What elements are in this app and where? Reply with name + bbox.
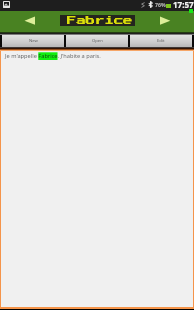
staticText: 76% (155, 1, 166, 8)
button[interactable]: Edit (130, 35, 192, 47)
button[interactable]: Open (66, 35, 128, 47)
button[interactable]: Next (157, 13, 175, 29)
staticText: Edit (157, 38, 165, 44)
staticText: Fabrice (67, 16, 133, 25)
button[interactable]: Previous (19, 13, 37, 29)
button[interactable]: New (2, 35, 64, 47)
staticText: Je m'appelle Fabrice. J'habite a paris. (5, 52, 101, 60)
staticText: Open (92, 38, 103, 44)
staticText: New (29, 38, 38, 44)
button[interactable]: Fabrice (60, 15, 135, 26)
staticText: 17:57 (173, 0, 194, 10)
other: Screenshot captured (3, 1, 10, 8)
